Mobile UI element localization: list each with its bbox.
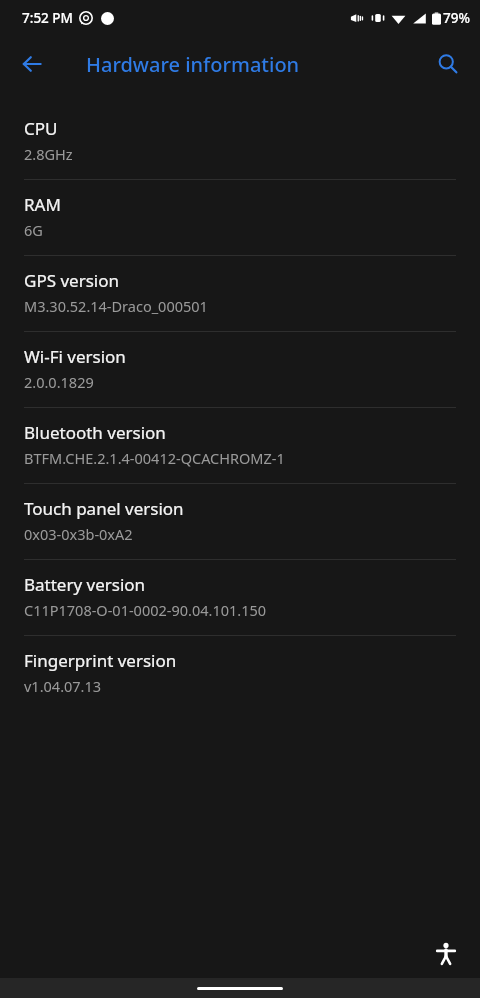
staticText: v1.04.07.13 bbox=[24, 676, 102, 696]
staticText: Touch panel version bbox=[24, 497, 184, 520]
staticText: Fingerprint version bbox=[24, 649, 177, 672]
staticText: 2.0.0.1829 bbox=[24, 372, 94, 392]
button[interactable]: Wi-Fi version bbox=[0, 332, 480, 407]
staticText: 6G bbox=[24, 220, 43, 240]
button[interactable]: GPS version bbox=[0, 256, 480, 331]
button[interactable]: Search bbox=[425, 41, 471, 87]
button[interactable]: CPU bbox=[0, 104, 480, 179]
staticText: M3.30.52.14-Draco_000501 bbox=[24, 296, 208, 316]
staticText: 79% bbox=[443, 9, 470, 27]
staticText: Bluetooth version bbox=[24, 421, 166, 444]
staticText: 0x03-0x3b-0xA2 bbox=[24, 524, 133, 544]
staticText: 7:52 PM bbox=[22, 9, 73, 27]
button[interactable]: Fingerprint version bbox=[0, 636, 480, 711]
staticText: GPS version bbox=[24, 269, 119, 292]
staticText: Hardware information bbox=[86, 51, 300, 78]
button[interactable]: Touch panel version bbox=[0, 484, 480, 559]
staticText: BTFM.CHE.2.1.4-00412-QCACHROMZ-1 bbox=[24, 448, 285, 468]
staticText: 2.8GHz bbox=[24, 144, 73, 164]
staticText: RAM bbox=[24, 193, 61, 216]
button[interactable]: RAM bbox=[0, 180, 480, 255]
button[interactable]: Accessibility menu bbox=[428, 936, 464, 972]
button[interactable]: Back bbox=[8, 40, 56, 88]
staticText: Battery version bbox=[24, 573, 146, 596]
staticText: CPU bbox=[24, 117, 58, 140]
button[interactable]: Bluetooth version bbox=[0, 408, 480, 483]
staticText: C11P1708-O-01-0002-90.04.101.150 bbox=[24, 600, 267, 620]
staticText: Wi-Fi version bbox=[24, 345, 126, 368]
button[interactable]: Battery version bbox=[0, 560, 480, 635]
